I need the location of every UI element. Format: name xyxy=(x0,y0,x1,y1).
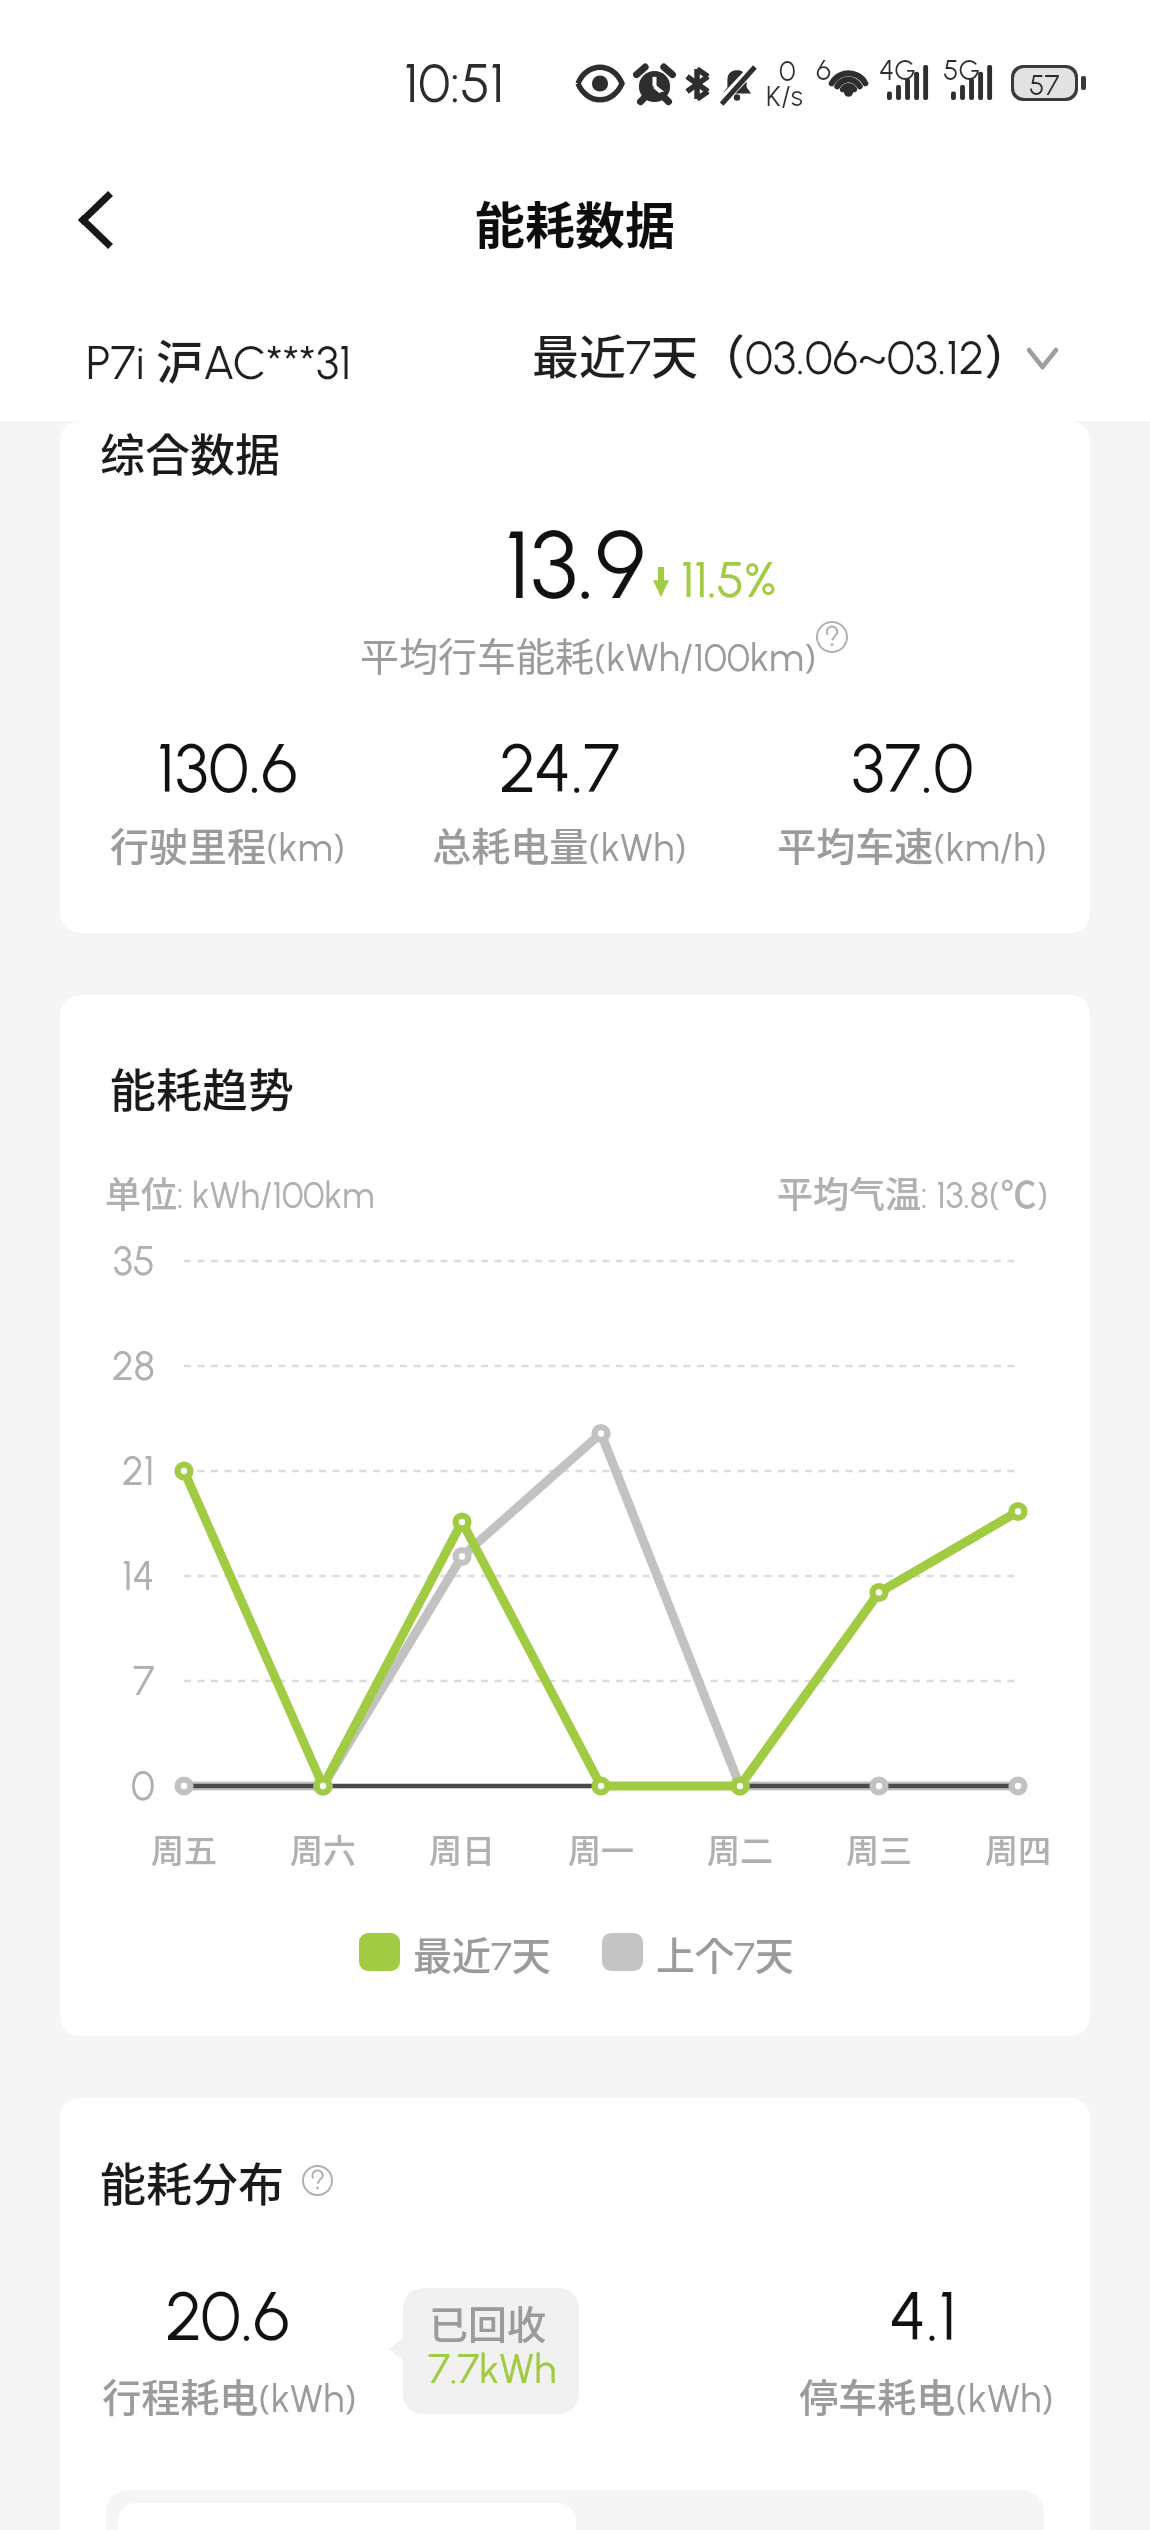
staticText: 上个7天 xyxy=(656,1925,794,1981)
staticText: 周一 xyxy=(568,1825,634,1873)
button[interactable]: Back xyxy=(40,165,150,275)
staticText: 能耗分布 xyxy=(100,2148,284,2215)
staticText: 停车耗电(kWh) xyxy=(799,2367,1054,2423)
staticText: 7.7kWh xyxy=(428,2344,557,2393)
staticText: 能耗趋势 xyxy=(110,1054,294,1121)
staticText: 4.1 xyxy=(889,2275,957,2357)
staticText: 平均气温: 13.8(℃) xyxy=(705,1166,1048,1218)
staticText: 平均车速(km/h) xyxy=(777,816,1047,872)
staticText: 57 xyxy=(1029,68,1060,98)
staticText: 24.7 xyxy=(499,727,620,809)
staticText: 行驶里程(km) xyxy=(110,816,345,872)
staticText: 最近7天 xyxy=(413,1925,551,1981)
staticText: 14 xyxy=(122,1552,155,1600)
staticText: K/s xyxy=(766,79,803,113)
staticText: 周四 xyxy=(985,1825,1051,1873)
staticText: 周三 xyxy=(846,1825,912,1873)
staticText: 21 xyxy=(122,1447,155,1495)
staticText: 13.9 xyxy=(505,507,646,622)
staticText: 37.0 xyxy=(851,727,974,809)
staticText: 6 xyxy=(816,53,832,87)
staticText: 已回收 xyxy=(429,2294,547,2350)
staticText: 总耗电量(kWh) xyxy=(432,816,687,872)
staticText: 行程耗电(kWh) xyxy=(102,2367,357,2423)
staticText: 11.5% xyxy=(681,549,777,609)
staticText: 0 xyxy=(131,1762,155,1810)
staticText: 35 xyxy=(113,1237,155,1285)
staticText: 单位: kWh/100km xyxy=(105,1166,375,1218)
staticText: 综合数据 xyxy=(100,420,281,485)
staticText: 20.6 xyxy=(165,2275,290,2357)
staticText: 130.6 xyxy=(157,727,298,809)
staticText: 5G xyxy=(943,53,981,87)
staticText: 最近7天（03.06~03.12） xyxy=(532,319,1032,387)
staticText: 4G xyxy=(879,53,916,87)
staticText: 平均行车能耗(kWh/100km) xyxy=(360,626,817,682)
staticText: 28 xyxy=(112,1342,155,1390)
staticText: 10:51 xyxy=(404,51,505,116)
staticText: 周六 xyxy=(290,1825,356,1873)
staticText: P7i 沪AC***31 xyxy=(86,324,352,392)
staticText: 周五 xyxy=(151,1825,217,1873)
button[interactable]: 最近7天（03.06~03.12） xyxy=(520,298,1080,408)
staticText: 7 xyxy=(133,1657,155,1705)
staticText: 能耗数据 xyxy=(475,186,675,258)
staticText: 周二 xyxy=(707,1825,773,1873)
staticText: 0 xyxy=(779,54,796,88)
staticText: 周日 xyxy=(429,1825,495,1873)
